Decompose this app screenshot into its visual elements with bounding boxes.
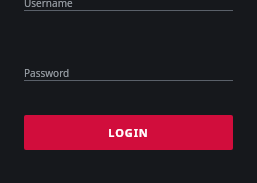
staticText: Password [24, 66, 70, 80]
staticText: Username [24, 0, 73, 10]
button[interactable]: LOGIN [24, 115, 233, 150]
button[interactable]: Password [24, 66, 233, 80]
staticText: LOGIN [108, 125, 149, 140]
button[interactable]: Username [24, 0, 233, 10]
